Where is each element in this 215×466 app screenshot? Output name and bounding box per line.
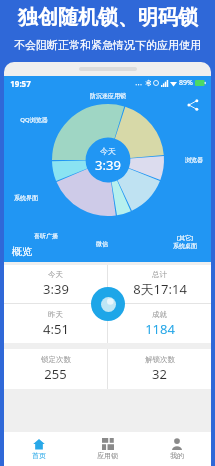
staticText: 系统界面 — [14, 194, 38, 202]
staticText: 成就 — [152, 310, 167, 319]
button[interactable]: 昨天 — [4, 304, 107, 343]
button[interactable]: 应用锁 — [73, 432, 142, 466]
staticText: 锁定次数 — [41, 355, 71, 364]
staticText: 今天 — [100, 146, 116, 156]
staticText: 1184 — [145, 320, 175, 338]
staticText: 应用锁 — [97, 451, 118, 460]
staticText: 不会阻断正常和紧急情况下的应用使用 — [14, 38, 201, 52]
button[interactable]: 首页 — [4, 432, 73, 466]
staticText: 浏览器 — [185, 156, 203, 164]
staticText: 昨天 — [48, 310, 63, 319]
staticText: [其它] — [177, 234, 193, 242]
staticText: 8天17:14 — [133, 280, 187, 298]
button[interactable]: 解锁次数 — [108, 349, 211, 389]
staticText: 概览 — [12, 245, 32, 258]
button[interactable]: 总计 — [108, 265, 211, 303]
staticText: 微信 — [96, 240, 108, 248]
button[interactable]: 我的 — [142, 432, 211, 466]
staticText: 防沉迷应用锁 — [90, 92, 126, 100]
button[interactable]: 锁定次数 — [4, 349, 107, 389]
staticText: 255 — [44, 365, 67, 383]
staticText: 解锁次数 — [145, 355, 175, 364]
staticText: QQ浏览器 — [20, 116, 48, 124]
button[interactable]: 成就 — [108, 304, 211, 343]
staticText: 32 — [152, 365, 167, 383]
staticText: 3:39 — [43, 280, 69, 298]
staticText: 总计 — [152, 270, 167, 279]
staticText: 89% — [179, 78, 193, 88]
staticText: 3:39 — [95, 156, 121, 174]
staticText: 喜听广播 — [34, 232, 58, 240]
staticText: 首页 — [32, 451, 46, 460]
staticText: 今天 — [48, 270, 63, 279]
staticText: 4:51 — [43, 320, 69, 338]
staticText: 系统桌面 — [173, 242, 197, 250]
button[interactable]: 今天 — [4, 265, 107, 303]
staticText: 19:57 — [10, 78, 31, 89]
button[interactable]: Share — [183, 95, 203, 115]
button[interactable]: Sync — [91, 287, 125, 321]
staticText: 独创随机锁、明码锁 — [18, 5, 198, 30]
staticText: 我的 — [170, 451, 184, 460]
